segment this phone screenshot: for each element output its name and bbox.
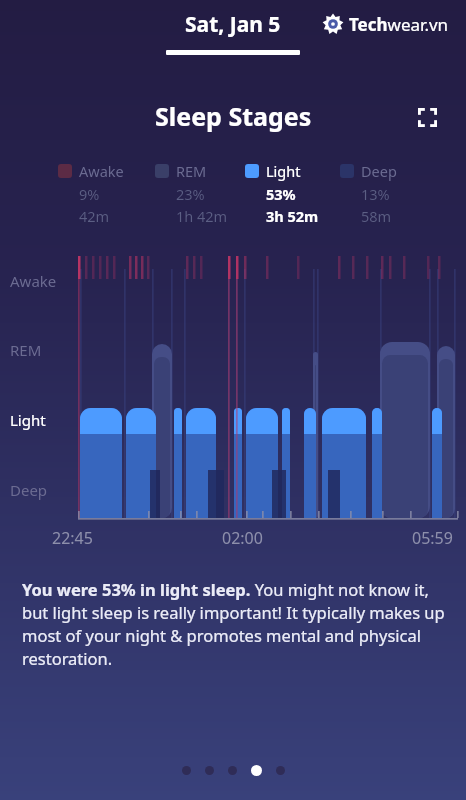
staticText: 13% bbox=[361, 184, 390, 204]
staticText: You were 53% in light sleep. You might n… bbox=[22, 578, 448, 670]
staticText: 22:45 bbox=[52, 527, 93, 549]
staticText: Light bbox=[10, 410, 46, 430]
button[interactable]: Deep bbox=[340, 161, 397, 226]
staticText: Light bbox=[266, 161, 301, 181]
staticText: 53% bbox=[266, 184, 296, 204]
button[interactable]: Light bbox=[245, 161, 301, 226]
staticText: Awake bbox=[79, 161, 124, 181]
button[interactable] bbox=[205, 766, 214, 775]
staticText: REM bbox=[176, 161, 207, 181]
button[interactable]: Collapse bbox=[410, 100, 444, 134]
staticText: 9% bbox=[79, 184, 100, 204]
staticText: Deep bbox=[361, 161, 397, 181]
button[interactable] bbox=[182, 766, 191, 775]
staticText: 1h 42m bbox=[176, 206, 228, 226]
staticText: REM bbox=[10, 340, 42, 360]
staticText: 23% bbox=[176, 184, 205, 204]
button[interactable] bbox=[276, 766, 285, 775]
button[interactable]: Awake bbox=[58, 161, 124, 226]
button[interactable]: Techwear.vn bbox=[322, 11, 449, 37]
button[interactable]: Sat, Jan 5 bbox=[150, 10, 316, 68]
staticText: Sleep Stages bbox=[155, 99, 312, 133]
staticText: 02:00 bbox=[222, 527, 263, 549]
staticText: 58m bbox=[361, 206, 392, 226]
staticText: Awake bbox=[10, 271, 57, 291]
staticText: 42m bbox=[79, 206, 110, 226]
button[interactable]: REM bbox=[155, 161, 207, 226]
staticText: Deep bbox=[10, 480, 48, 500]
button[interactable] bbox=[251, 765, 262, 776]
staticText: Techwear.vn bbox=[349, 13, 449, 36]
staticText: Sat, Jan 5 bbox=[185, 10, 281, 39]
button[interactable] bbox=[228, 766, 237, 775]
staticText: 3h 52m bbox=[266, 206, 319, 226]
staticText: 05:59 bbox=[412, 527, 453, 549]
